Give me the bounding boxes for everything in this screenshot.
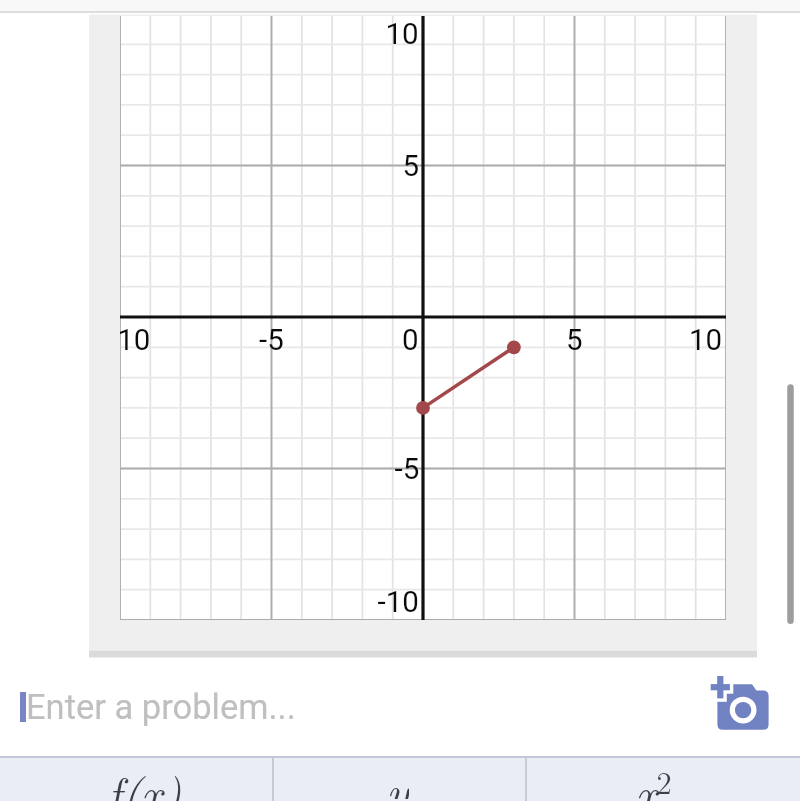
staticText: Enter a problem...: [26, 687, 296, 727]
button[interactable]: f(x): [0, 758, 272, 801]
staticText: f(x): [107, 758, 182, 801]
button[interactable]: Scan problem with camera: [696, 658, 800, 756]
button[interactable]: y: [274, 758, 525, 801]
button[interactable]: Enter a problem...: [0, 658, 800, 756]
staticText: y: [386, 756, 409, 799]
staticText: x2: [635, 758, 672, 801]
button[interactable]: x2: [527, 758, 800, 801]
